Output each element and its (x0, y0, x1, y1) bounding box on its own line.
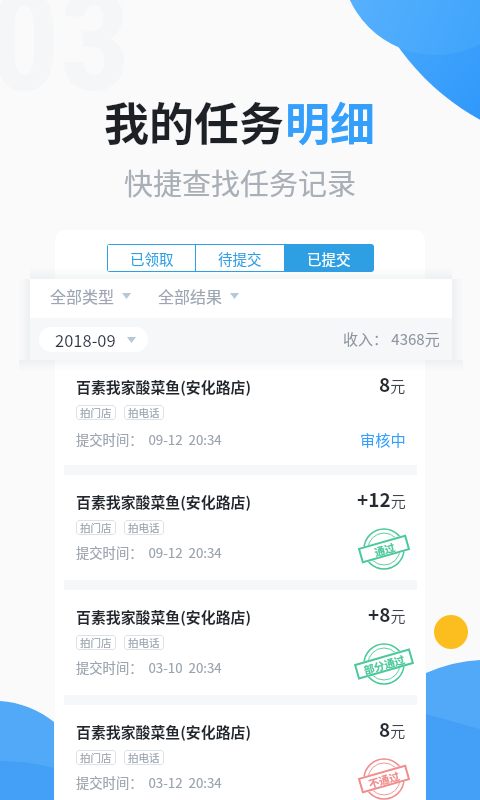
staticText: 2018-09 (55, 328, 116, 352)
staticText: 审核中 (360, 428, 406, 450)
button[interactable]: 已领取 (108, 245, 195, 271)
button[interactable]: 2018-09 (39, 327, 148, 352)
staticText: 收入： 4368元 (343, 328, 440, 350)
staticText: 拍电话 (128, 405, 160, 420)
button[interactable]: 待提交 (196, 245, 284, 271)
staticText: 已提交 (307, 248, 351, 269)
staticText: 快捷查找任务记录 (124, 161, 357, 203)
staticText: 提交时间： 09-12 20:34 (76, 430, 222, 449)
button[interactable]: 百素我家酸菜鱼(安化路店) (64, 475, 417, 580)
staticText: 拍电话 (128, 520, 160, 535)
staticText: 已领取 (130, 248, 174, 269)
staticText: 通过 (372, 539, 397, 559)
staticText: 拍电话 (128, 750, 160, 765)
button[interactable]: 百素我家酸菜鱼(安化路店) (64, 590, 417, 695)
staticText: 百素我家酸菜鱼(安化路店) (76, 721, 252, 743)
staticText: 8元 (379, 370, 406, 398)
staticText: 03 (0, 0, 131, 124)
staticText: 百素我家酸菜鱼(安化路店) (76, 491, 252, 513)
staticText: 明细 (285, 89, 376, 154)
staticText: 拍门店 (80, 520, 112, 535)
staticText: 拍门店 (80, 405, 112, 420)
staticText: 百素我家酸菜鱼(安化路店) (76, 376, 252, 398)
staticText: 百素我家酸菜鱼(安化路店) (76, 606, 252, 628)
staticText: 拍门店 (80, 635, 112, 650)
staticText: +8元 (368, 600, 406, 628)
staticText: 8元 (379, 715, 406, 743)
staticText: 拍门店 (80, 750, 112, 765)
staticText: +12元 (357, 485, 406, 513)
button[interactable]: 全部结果 (158, 284, 239, 307)
staticText: 提交时间： 09-12 20:34 (76, 543, 222, 562)
button[interactable]: 百素我家酸菜鱼(安化路店) (64, 705, 417, 800)
staticText: 不通过 (367, 768, 402, 791)
staticText: 部分通过 (362, 651, 406, 677)
staticText: 全部结果 (158, 284, 223, 307)
staticText: 全部类型 (50, 284, 115, 307)
button[interactable]: 百素我家酸菜鱼(安化路店) (64, 360, 417, 465)
staticText: 提交时间： 03-12 20:34 (76, 773, 222, 792)
staticText: 我的任务 (104, 89, 285, 154)
button[interactable]: 全部类型 (50, 284, 131, 307)
button[interactable]: 已提交 (285, 245, 373, 271)
staticText: 提交时间： 03-10 20:34 (76, 658, 222, 677)
staticText: 拍电话 (128, 635, 160, 650)
staticText: 待提交 (218, 248, 262, 269)
